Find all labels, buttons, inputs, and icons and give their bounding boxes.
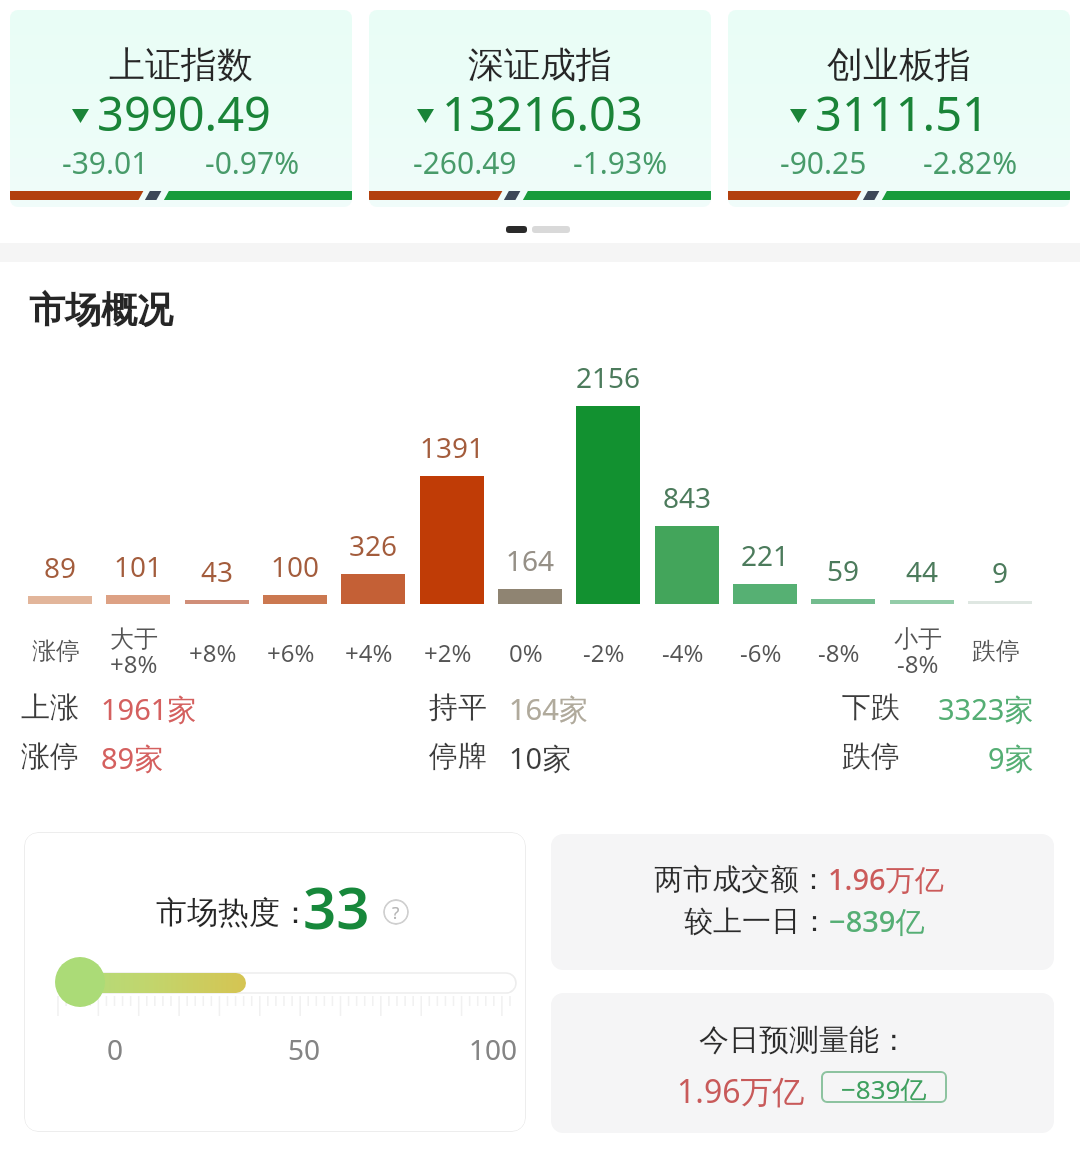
button[interactable]: Page 1 (500, 218, 533, 240)
staticText: 164 (506, 541, 555, 579)
staticText: 两市成交额： (654, 861, 828, 898)
staticText: 3111.51 (815, 81, 989, 145)
staticText: -260.49 (413, 142, 517, 183)
button[interactable]: 今日预测量能： (551, 993, 1054, 1133)
staticText: 2156 (576, 358, 641, 396)
staticText: 涨停 (32, 636, 80, 666)
staticText: 跌停 (972, 636, 1020, 666)
staticText: 1961家 (101, 689, 197, 729)
staticText: -0.97% (205, 142, 300, 183)
staticText: -8% (818, 636, 860, 669)
staticText: 今日预测量能： (699, 1021, 909, 1059)
staticText: 大于 (110, 624, 158, 654)
button[interactable]: Help: what is market heat (383, 899, 409, 925)
staticText: 50 (288, 1030, 321, 1068)
staticText: 上证指数 (109, 42, 253, 87)
staticText: 1.96万亿 (828, 859, 944, 899)
button[interactable]: 市场热度： (24, 832, 526, 1132)
staticText: 1.96万亿 (677, 1069, 805, 1113)
staticText: -39.01 (62, 142, 149, 183)
staticText: 9家 (988, 738, 1034, 778)
staticText: 1391 (420, 428, 485, 466)
staticText: -1.93% (573, 142, 668, 183)
staticText: +4% (345, 636, 393, 669)
button[interactable]: 两市成交额： (551, 834, 1054, 970)
staticText: −839亿 (841, 1071, 927, 1103)
staticText: 涨停 (21, 738, 79, 775)
button[interactable]: 上证指数 (10, 10, 352, 207)
staticText: -2% (583, 636, 625, 669)
staticText: -2.82% (923, 142, 1018, 183)
staticText: 停牌 (429, 738, 487, 775)
staticText: 0 (107, 1030, 124, 1068)
staticText: +8% (110, 647, 158, 680)
staticText: 59 (827, 551, 860, 589)
staticText: -4% (662, 636, 704, 669)
staticText: 100 (271, 547, 320, 585)
staticText: 164家 (509, 689, 588, 729)
button[interactable]: 创业板指 (728, 10, 1070, 207)
staticText: -6% (740, 636, 782, 669)
staticText: 843 (663, 478, 712, 516)
staticText: 89家 (101, 738, 164, 778)
staticText: 小于 (894, 624, 942, 654)
staticText: ? (392, 901, 400, 924)
button[interactable]: Page 2 (526, 218, 576, 240)
staticText: 较上一日： (684, 903, 829, 940)
staticText: 上涨 (21, 689, 79, 726)
staticText: 创业板指 (827, 42, 971, 87)
staticText: −839亿 (829, 901, 925, 941)
staticText: 深证成指 (468, 42, 612, 87)
staticText: 89 (44, 548, 77, 586)
staticText: -8% (897, 647, 939, 680)
staticText: 221 (741, 536, 790, 574)
staticText: 43 (201, 552, 234, 590)
staticText: 跌停 (842, 738, 900, 775)
staticText: +8% (189, 636, 237, 669)
staticText: 3323家 (938, 689, 1034, 729)
staticText: 100 (469, 1030, 518, 1068)
staticText: +6% (267, 636, 315, 669)
staticText: 3990.49 (97, 81, 271, 145)
staticText: +2% (424, 636, 472, 669)
staticText: 市场热度： (156, 893, 311, 932)
staticText: 下跌 (842, 689, 900, 726)
staticText: 持平 (429, 689, 487, 726)
staticText: -90.25 (780, 142, 867, 183)
staticText: 101 (114, 547, 163, 585)
staticText: 326 (349, 526, 398, 564)
button[interactable]: 深证成指 (369, 10, 711, 207)
staticText: 13216.03 (442, 81, 643, 145)
staticText: 市场概况 (29, 287, 173, 332)
staticText: 0% (509, 636, 543, 669)
staticText: 9 (992, 553, 1009, 591)
staticText: 44 (906, 552, 939, 590)
staticText: 10家 (509, 738, 572, 778)
staticText: 33 (303, 867, 370, 946)
